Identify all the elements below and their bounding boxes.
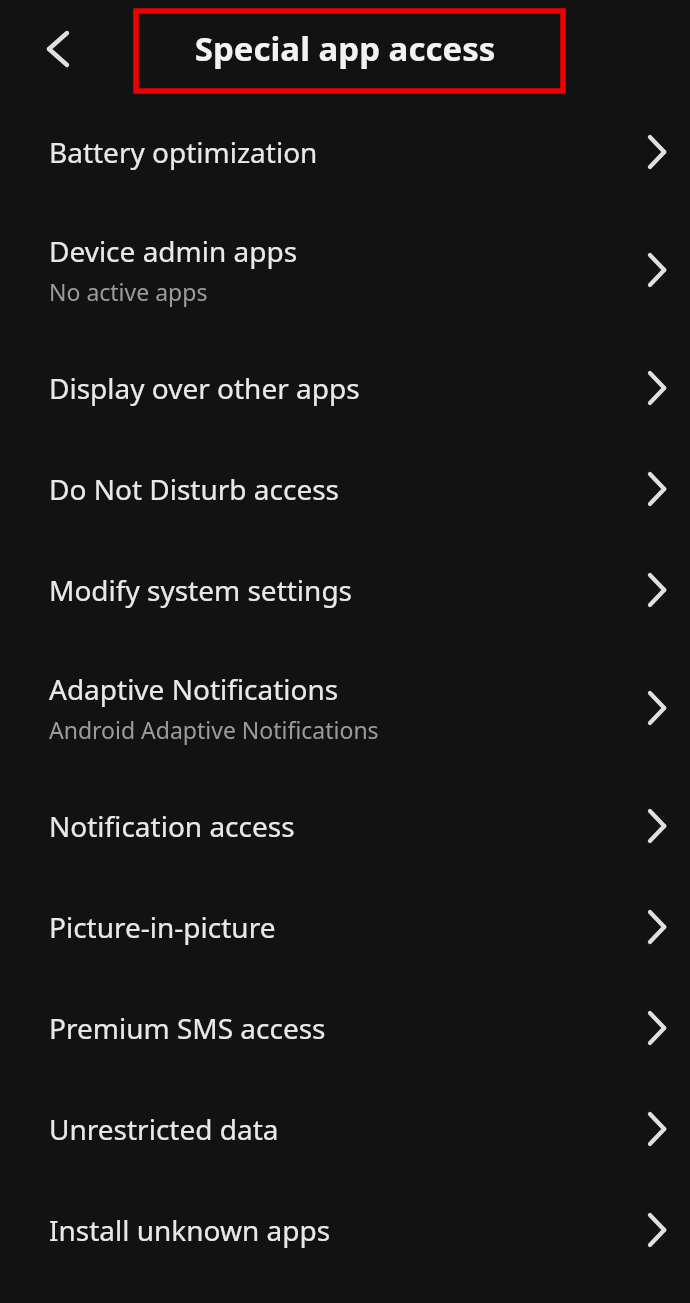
button[interactable]: Display over other apps xyxy=(0,337,690,438)
button[interactable]: Premium SMS access xyxy=(0,977,690,1078)
staticText: Install unknown apps xyxy=(49,1211,331,1249)
button[interactable]: Device admin apps xyxy=(0,202,690,337)
staticText: Adaptive Notifications xyxy=(49,670,339,708)
other: Modify system settings xyxy=(622,539,690,640)
staticText: Unrestricted data xyxy=(49,1110,279,1148)
staticText: Picture-in-picture xyxy=(49,908,276,946)
staticText: Notification access xyxy=(49,807,295,845)
button[interactable]: Battery optimization xyxy=(0,101,690,202)
other: Adaptive Notifications xyxy=(622,640,690,775)
staticText: Do Not Disturb access xyxy=(49,470,340,508)
button[interactable]: Modify system settings xyxy=(0,539,690,640)
staticText: Special app access xyxy=(0,26,690,71)
other: Battery optimization xyxy=(622,101,690,202)
other: Device admin apps xyxy=(622,202,690,337)
other: Unrestricted data xyxy=(622,1078,690,1179)
staticText: Premium SMS access xyxy=(49,1009,326,1047)
staticText: Modify system settings xyxy=(49,571,353,609)
other: Premium SMS access xyxy=(622,977,690,1078)
staticText: Device admin apps xyxy=(49,232,298,270)
button[interactable]: Install unknown apps xyxy=(0,1179,690,1280)
other: Picture-in-picture xyxy=(622,876,690,977)
other: Do Not Disturb access xyxy=(622,438,690,539)
button[interactable]: Do Not Disturb access xyxy=(0,438,690,539)
other: Install unknown apps xyxy=(622,1179,690,1280)
button[interactable]: Unrestricted data xyxy=(0,1078,690,1179)
staticText: Battery optimization xyxy=(49,133,318,171)
button[interactable]: Notification access xyxy=(0,775,690,876)
button[interactable]: Back xyxy=(29,21,85,77)
staticText: Android Adaptive Notifications xyxy=(49,714,379,745)
other: Display over other apps xyxy=(622,337,690,438)
staticText: Display over other apps xyxy=(49,369,360,407)
button[interactable]: Adaptive Notifications xyxy=(0,640,690,775)
button[interactable]: Picture-in-picture xyxy=(0,876,690,977)
other: Notification access xyxy=(622,775,690,876)
staticText: No active apps xyxy=(49,276,208,307)
